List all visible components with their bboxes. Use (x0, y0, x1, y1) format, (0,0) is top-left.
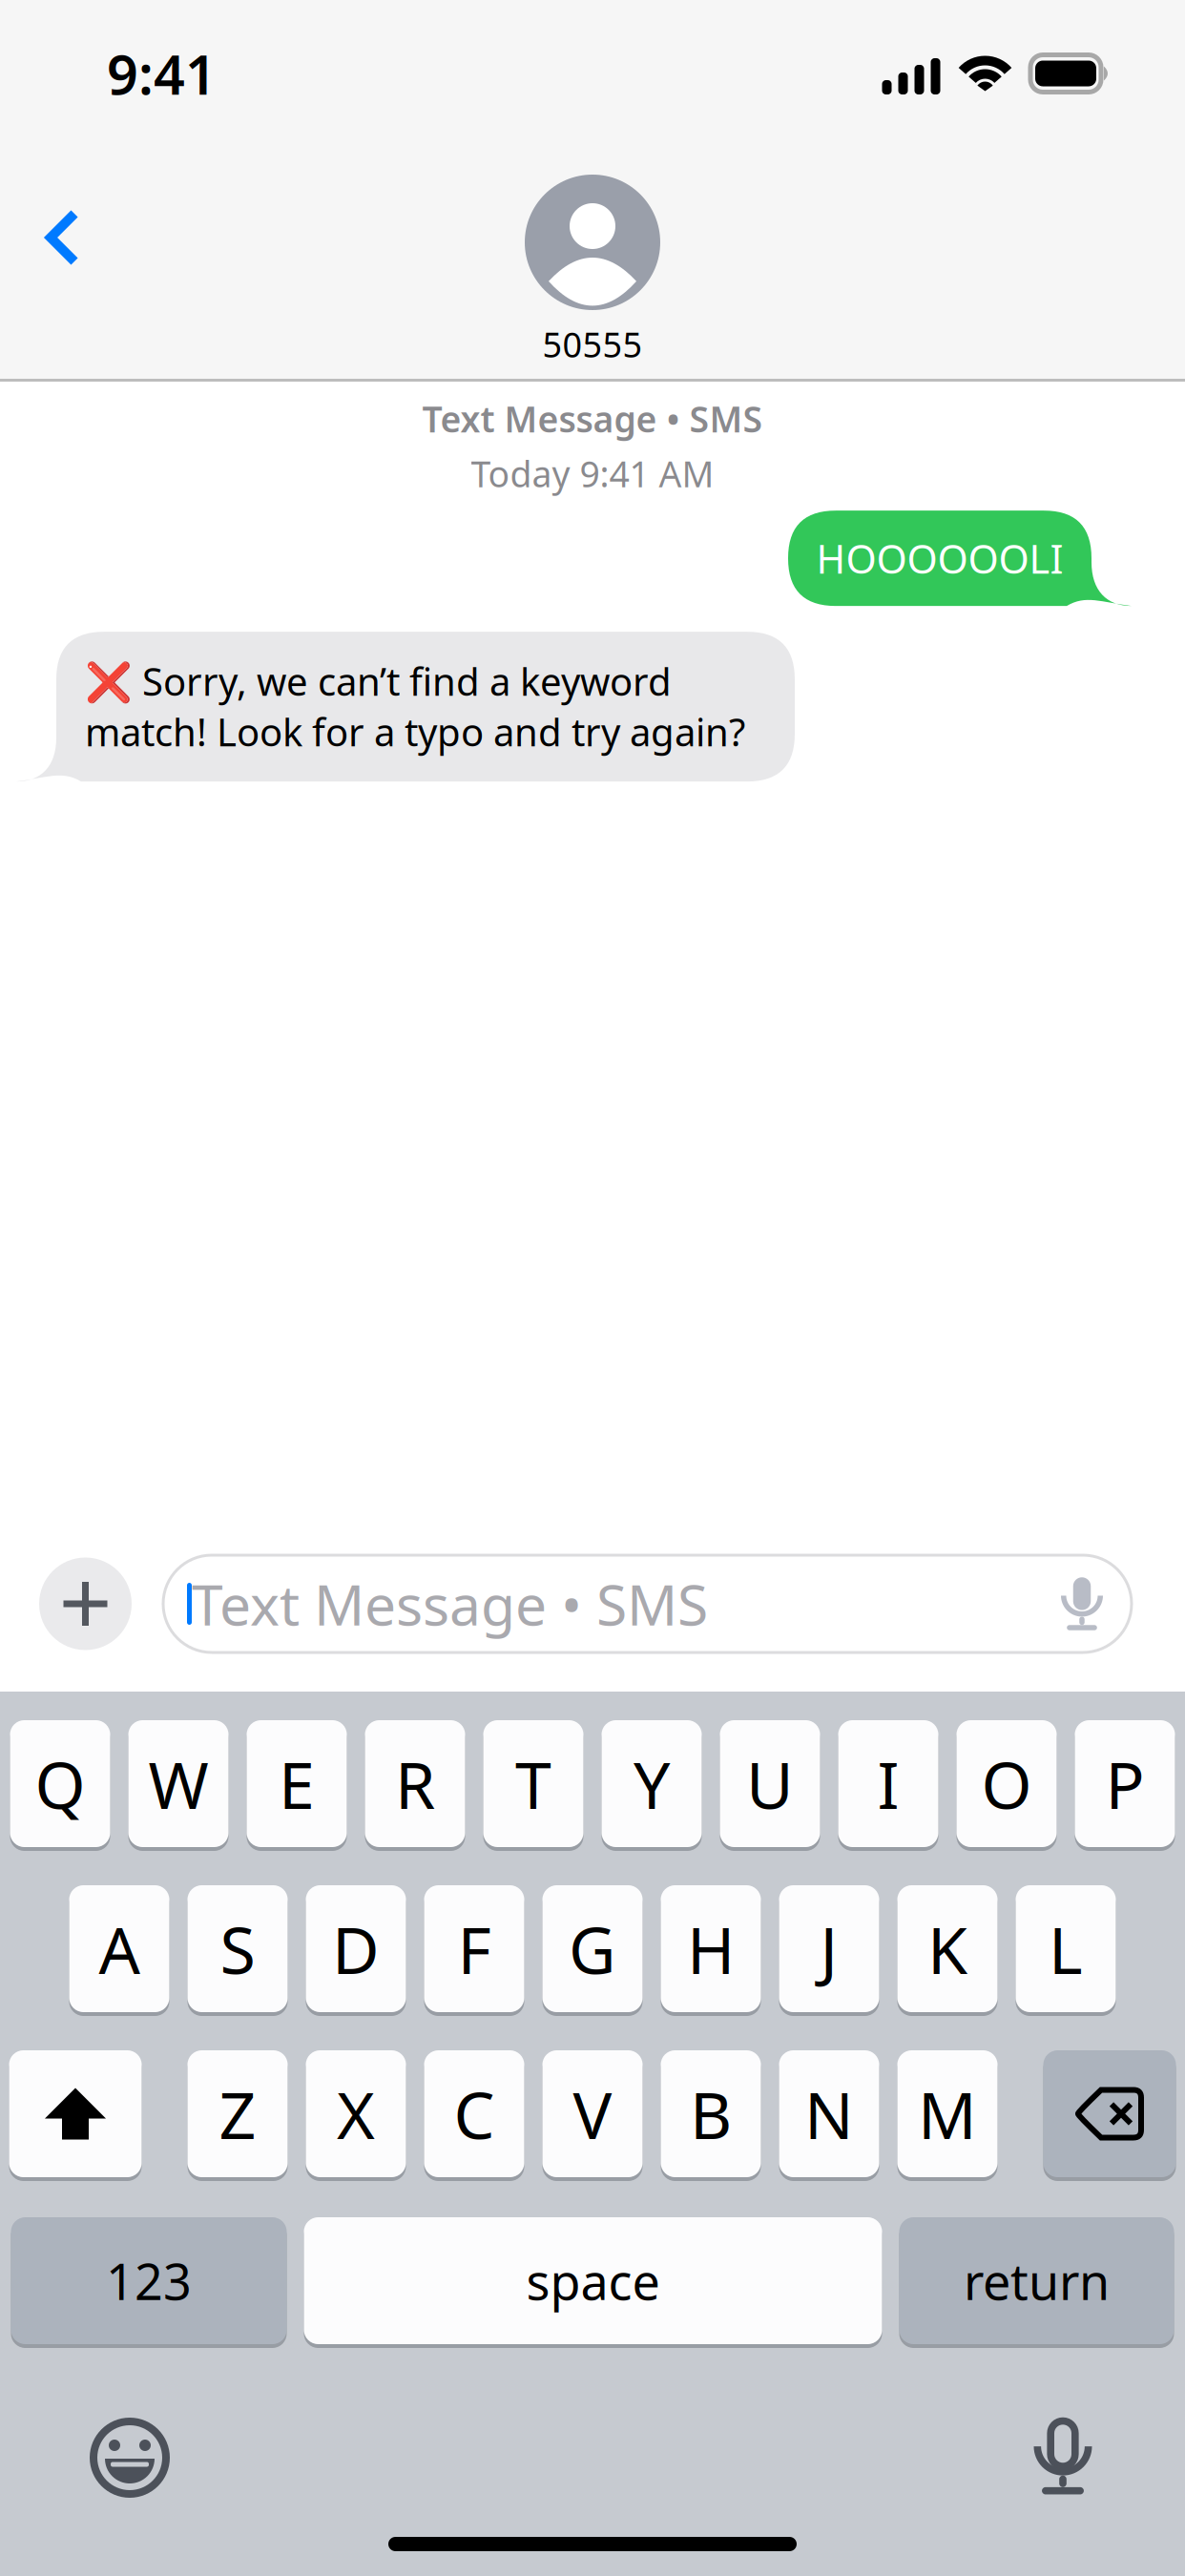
button[interactable]: S (187, 1883, 288, 2014)
button[interactable]: V (542, 2048, 643, 2179)
staticText: space (526, 2248, 660, 2314)
staticText: J (820, 1906, 838, 1992)
staticText: F (457, 1906, 491, 1992)
staticText: R (395, 1741, 435, 1827)
staticText: Z (219, 2071, 256, 2157)
staticText: L (1049, 1906, 1083, 1992)
staticText: K (927, 1906, 967, 1992)
staticText: E (279, 1741, 315, 1827)
button[interactable]: K (897, 1883, 998, 2014)
staticText: Text Message • SMS (422, 395, 763, 442)
staticText: S (220, 1906, 255, 1992)
button[interactable]: Q (10, 1718, 110, 1849)
button[interactable]: D (306, 1883, 406, 2014)
button[interactable]: U (720, 1718, 820, 1849)
button[interactable]: B (661, 2048, 761, 2179)
staticText: P (1105, 1741, 1144, 1827)
staticText: W (148, 1741, 208, 1827)
button[interactable]: Shift (9, 2048, 142, 2179)
button[interactable]: L (1016, 1883, 1116, 2014)
button[interactable]: space (304, 2215, 882, 2346)
staticText: HOOOOOOLI (816, 532, 1063, 584)
button[interactable]: Dictation (1020, 2413, 1106, 2503)
staticText: A (99, 1906, 140, 1992)
button[interactable]: Y (602, 1718, 702, 1849)
staticText: V (573, 2071, 612, 2157)
staticText: N (804, 2071, 854, 2157)
button[interactable]: J (779, 1883, 879, 2014)
staticText: G (569, 1906, 616, 1992)
button[interactable]: T (483, 1718, 583, 1849)
staticText: ❌ Sorry, we can’t find a keyword match! … (85, 656, 745, 757)
button[interactable]: N (779, 2048, 879, 2179)
button[interactable]: E (247, 1718, 347, 1849)
staticText: Q (35, 1741, 85, 1827)
button[interactable]: W (128, 1718, 229, 1849)
staticText: U (746, 1741, 794, 1827)
staticText: I (877, 1741, 899, 1827)
button[interactable]: 123 (11, 2215, 287, 2346)
staticText: H (687, 1906, 735, 1992)
staticText: T (515, 1741, 551, 1827)
button[interactable]: Back (0, 122, 108, 295)
button[interactable]: H (661, 1883, 761, 2014)
button[interactable]: M (897, 2048, 998, 2179)
staticText: B (690, 2071, 732, 2157)
staticText: M (918, 2071, 977, 2157)
button[interactable]: G (542, 1883, 643, 2014)
button[interactable]: P (1075, 1718, 1175, 1849)
staticText: X (337, 2071, 375, 2157)
staticText: Today 9:41 AM (471, 450, 714, 497)
staticText: 50555 (542, 322, 643, 367)
staticText: 123 (106, 2248, 192, 2314)
staticText: 9:41 (107, 37, 217, 110)
button[interactable]: F (424, 1883, 524, 2014)
button[interactable]: I (838, 1718, 938, 1849)
staticText: Y (634, 1741, 670, 1827)
staticText: C (454, 2071, 495, 2157)
button[interactable]: Emoji (87, 2415, 173, 2501)
button[interactable]: return (899, 2215, 1174, 2346)
button[interactable]: A (69, 1883, 169, 2014)
button[interactable]: Delete (1043, 2048, 1176, 2179)
button[interactable]: C (424, 2048, 524, 2179)
button[interactable]: Z (187, 2048, 288, 2179)
button[interactable]: X (306, 2048, 406, 2179)
staticText: return (964, 2248, 1110, 2314)
button[interactable]: O (956, 1718, 1057, 1849)
button[interactable]: R (365, 1718, 465, 1849)
staticText: D (332, 1906, 380, 1992)
button[interactable]: More options (39, 1558, 132, 1650)
staticText: O (981, 1741, 1032, 1827)
staticText: Text Message • SMS (192, 1567, 708, 1641)
